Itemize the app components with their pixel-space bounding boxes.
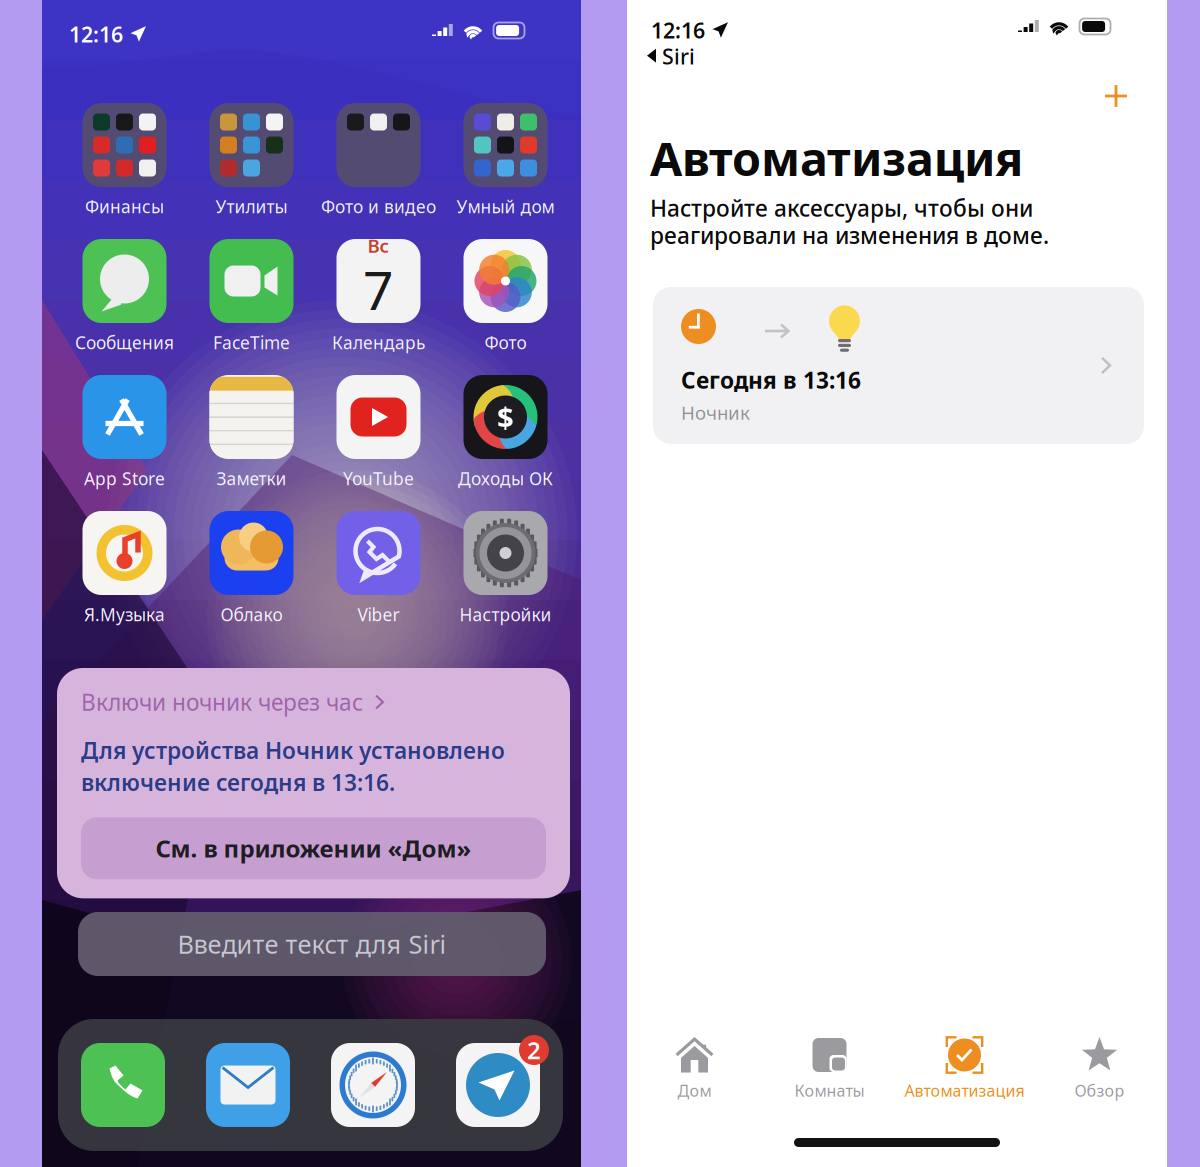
staticText: Настройте аксессуары, чтобы они [650,193,1033,223]
staticText: реагировали на изменения в доме. [650,220,1049,250]
button[interactable]: Вс [315,239,442,359]
staticText: Фото и видео [321,195,436,218]
staticText: Календарь [332,331,425,354]
button[interactable]: Я.Музыка [61,511,188,631]
button[interactable]: Сегодня в 13:16 [653,287,1144,444]
button[interactable]: Mail [206,1043,290,1127]
button[interactable]: Viber [315,511,442,631]
staticText: Фото [484,331,526,354]
staticText: Вс [367,233,389,258]
staticText: Введите текст для Siri [177,927,446,961]
button[interactable]: Комнаты [762,1036,897,1110]
button[interactable]: Заметки [188,375,315,495]
staticText: Для устройства Ночник установлено [81,735,505,765]
staticText: Комнаты [794,1080,864,1101]
staticText: 7 [363,254,394,325]
staticText: FaceTime [213,331,290,354]
staticText: 2 [527,1034,541,1066]
button[interactable]: $ [442,375,569,495]
staticText: включение сегодня в 13:16. [81,767,395,797]
staticText: Ночник [681,400,750,425]
button[interactable]: Сообщения [61,239,188,359]
staticText: $ [497,397,514,436]
button[interactable]: YouTube [315,375,442,495]
button[interactable]: Фото [442,239,569,359]
button[interactable]: FaceTime [188,239,315,359]
staticText: Я.Музыка [84,603,165,626]
button[interactable]: App Store [61,375,188,495]
staticText: Обзор [1074,1080,1124,1101]
button[interactable]: Облако [188,511,315,631]
button[interactable]: Phone [81,1043,165,1127]
staticText: Дом [677,1080,711,1101]
button[interactable]: Автоматизация [897,1036,1032,1110]
staticText: Умный дом [456,195,554,218]
staticText: Включи ночник через час [81,687,363,717]
staticText: Siri [662,42,695,70]
button[interactable]: Утилиты [188,103,315,223]
staticText: App Store [84,467,165,490]
button[interactable]: Обзор [1032,1036,1167,1110]
staticText: Доходы ОК [458,467,553,490]
staticText: Утилиты [215,195,287,218]
staticText: Сообщения [75,331,174,354]
staticText: Viber [357,603,399,626]
button[interactable]: Настройки [442,511,569,631]
button[interactable]: Дом [627,1036,762,1110]
staticText: Автоматизация [650,127,1023,189]
staticText: Заметки [216,467,286,490]
button[interactable]: Safari [331,1043,415,1127]
staticText: Автоматизация [904,1080,1024,1101]
staticText: Финансы [85,195,164,218]
staticText: Облако [220,603,282,626]
button[interactable]: Siri [647,40,695,72]
staticText: YouTube [343,467,414,490]
button[interactable]: См. в приложении «Дом» [81,817,546,879]
button[interactable]: Telegram [456,1043,540,1127]
staticText: 12:16 [651,16,705,44]
button[interactable]: Умный дом [442,103,569,223]
button[interactable]: Фото и видео [315,103,442,223]
staticText: Настройки [459,603,551,626]
button[interactable]: Введите текст для Siri [78,912,546,976]
staticText: Сегодня в 13:16 [681,365,861,395]
staticText: См. в приложении «Дом» [155,832,471,864]
button[interactable]: Финансы [61,103,188,223]
button[interactable]: Включи ночник через час [81,687,388,717]
staticText: 12:16 [69,20,123,48]
button[interactable]: Add automation [1092,72,1140,120]
